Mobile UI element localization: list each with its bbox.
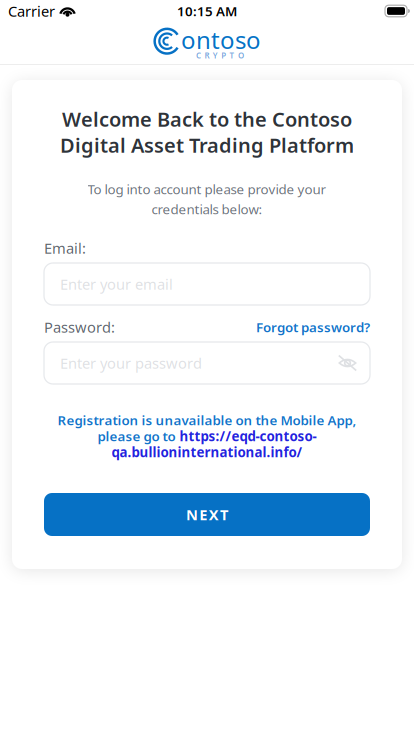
- button[interactable]: Registration is unavailable on the Mobil…: [57, 412, 356, 460]
- staticText: Carrier: [8, 1, 55, 21]
- staticText: C: [196, 50, 201, 61]
- staticText: Registration is unavailable on the Mobil…: [57, 411, 356, 429]
- staticText: NEXT: [186, 505, 228, 524]
- staticText: qa.bullioninternational.info/: [111, 443, 302, 461]
- button[interactable]: NEXT: [44, 493, 370, 536]
- staticText: Password:: [44, 317, 115, 337]
- staticText: Digital Asset Trading Platform: [60, 132, 354, 158]
- staticText: To log into account please provide your: [87, 180, 326, 198]
- button[interactable]: Forgot password?: [256, 318, 370, 336]
- staticText: Y: [213, 50, 218, 61]
- staticText: credentials below:: [151, 200, 262, 218]
- staticText: P: [221, 50, 226, 61]
- staticText: T: [230, 50, 235, 61]
- staticText: Email:: [44, 238, 86, 258]
- staticText: Welcome Back to the Contoso: [62, 106, 352, 132]
- staticText: https://eqd-contoso-: [179, 427, 316, 445]
- staticText: 10:15 AM: [177, 2, 237, 20]
- staticText: Enter your email: [60, 274, 173, 294]
- staticText: Enter your password: [60, 353, 202, 373]
- staticText: R: [204, 50, 209, 61]
- staticText: please go to: [97, 427, 175, 445]
- staticText: ontoso: [181, 24, 261, 56]
- staticText: Forgot password?: [256, 318, 370, 336]
- staticText: O: [238, 50, 244, 61]
